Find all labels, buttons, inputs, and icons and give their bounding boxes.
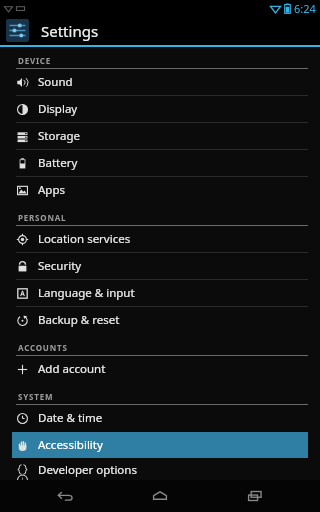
staticText: Display — [38, 101, 78, 117]
staticText: Add account — [38, 361, 106, 377]
staticText: PERSONAL — [18, 212, 67, 223]
staticText: 6:24 — [294, 1, 316, 16]
button[interactable]: Display — [12, 96, 308, 122]
staticText: Battery — [38, 155, 78, 171]
button[interactable]: Accessibility — [12, 432, 308, 458]
button[interactable]: Battery — [12, 150, 308, 176]
button[interactable]: Location services — [12, 226, 308, 252]
button[interactable]: Sound — [12, 69, 308, 95]
button[interactable]: Home — [130, 480, 190, 512]
button[interactable]: Language & input — [12, 280, 308, 306]
staticText: Accessibility — [38, 437, 103, 453]
staticText: Security — [38, 258, 82, 274]
staticText: Backup & reset — [38, 312, 120, 328]
staticText: Storage — [38, 128, 80, 144]
staticText: DEVICE — [18, 55, 52, 66]
staticText: Location services — [38, 231, 131, 247]
staticText: SYSTEM — [18, 391, 54, 402]
staticText: Settings — [41, 21, 99, 41]
button[interactable]: Add account — [12, 356, 308, 382]
staticText: Apps — [38, 182, 66, 198]
button[interactable]: Apps — [12, 177, 308, 203]
button[interactable]: Back — [35, 480, 95, 512]
button[interactable]: Date & time — [12, 405, 308, 431]
staticText: ACCOUNTS — [18, 342, 68, 353]
staticText: Date & time — [38, 410, 103, 426]
button[interactable]: Storage — [12, 123, 308, 149]
button[interactable]: Security — [12, 253, 308, 279]
button[interactable]: Backup & reset — [12, 307, 308, 333]
button[interactable]: Developer options — [12, 459, 308, 480]
staticText: Sound — [38, 74, 73, 90]
button[interactable]: Recent apps — [225, 480, 285, 512]
staticText: Language & input — [38, 285, 135, 301]
staticText: Developer options — [38, 462, 137, 478]
